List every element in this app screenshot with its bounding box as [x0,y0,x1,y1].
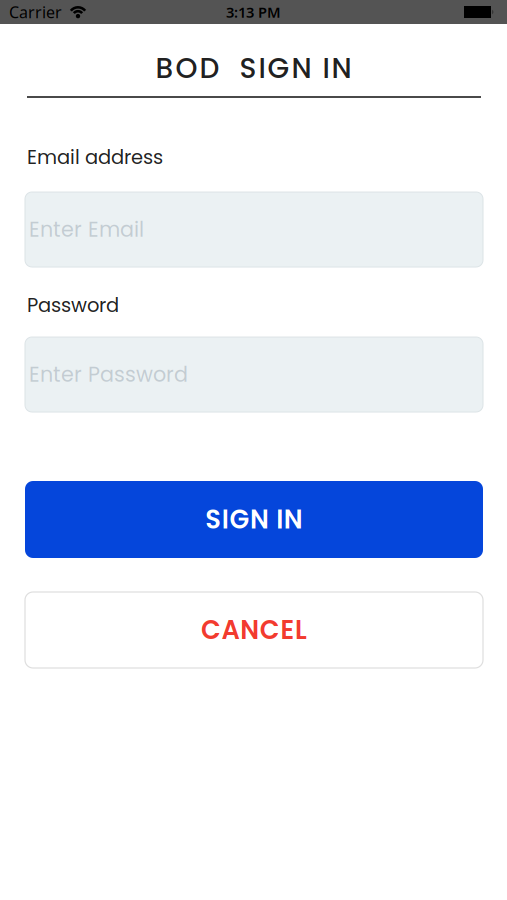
button[interactable]: CANCEL [25,592,483,668]
button[interactable]: Enter Password [25,337,483,412]
staticText: 3:13 PM [226,2,281,22]
staticText: Enter Password [29,360,188,389]
staticText: Password [27,291,119,319]
button[interactable]: SIGN IN [25,481,483,558]
staticText: BOD SIGN IN [155,48,351,88]
button[interactable]: Enter Email [25,192,483,267]
staticText: Carrier [9,1,62,23]
staticText: SIGN IN [205,501,303,537]
staticText: CANCEL [201,612,307,648]
staticText: Email address [27,143,163,171]
staticText: Enter Email [29,215,144,244]
